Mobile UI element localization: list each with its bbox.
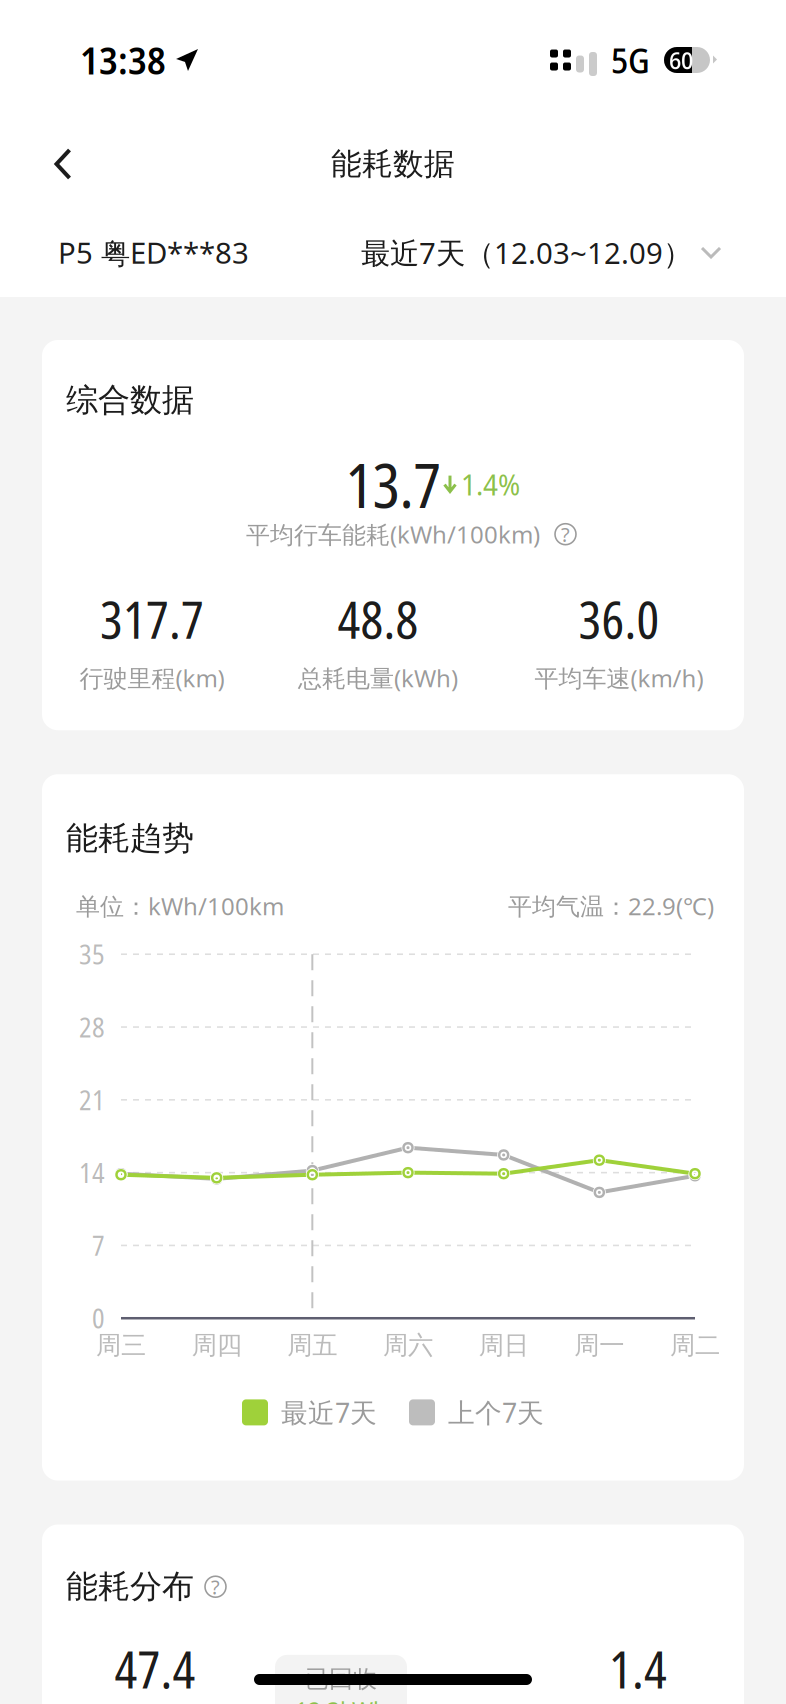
staticText: ? — [211, 1573, 220, 1600]
button[interactable]: 最近7天（12.03~12.09） — [361, 232, 722, 272]
staticText: 48.8 — [337, 584, 418, 653]
staticText: 21 — [79, 1082, 105, 1118]
staticText: P5 粤ED***83 — [58, 232, 249, 273]
staticText: 周五 — [287, 1329, 337, 1361]
staticText: 13:38 — [80, 35, 166, 85]
staticText: 0 — [92, 1300, 105, 1336]
staticText: ? — [561, 521, 570, 548]
staticText: 单位：kWh/100km — [76, 889, 284, 922]
button[interactable]: Back — [32, 131, 94, 197]
staticText: 28 — [79, 1009, 105, 1045]
staticText: 行驶里程(km) — [79, 661, 224, 694]
staticText: 总耗电量(kWh) — [298, 661, 458, 694]
staticText: 能耗分布 — [66, 1567, 194, 1607]
staticText: 5G — [611, 36, 650, 84]
staticText: 综合数据 — [66, 380, 194, 420]
staticText: 周六 — [383, 1329, 433, 1361]
staticText: 能耗数据 — [331, 145, 455, 183]
staticText: 1.4 — [609, 1634, 667, 1703]
staticText: 最近7天 — [281, 1394, 377, 1430]
staticText: 周日 — [479, 1329, 529, 1361]
staticText: 已回收 — [305, 1664, 377, 1694]
staticText: 周四 — [192, 1329, 242, 1361]
staticText: 13.7 — [345, 442, 440, 526]
staticText: 35 — [79, 936, 105, 972]
staticText: 317.7 — [100, 584, 204, 653]
staticText: 60 — [669, 44, 693, 76]
staticText: 36.0 — [578, 584, 659, 653]
staticText: 47.4 — [114, 1634, 195, 1703]
staticText: 12.3kWh — [295, 1695, 387, 1704]
staticText: 周三 — [96, 1329, 146, 1361]
staticText: 平均行车能耗(kWh/100km) — [246, 518, 540, 550]
staticText: 能耗趋势 — [66, 818, 194, 858]
staticText: 1.4% — [461, 464, 520, 504]
staticText: 平均气温：22.9(℃) — [508, 889, 714, 922]
staticText: 最近7天（12.03~12.09） — [361, 232, 692, 272]
staticText: 周一 — [574, 1329, 624, 1361]
staticText: 平均车速(km/h) — [534, 661, 703, 694]
staticText: 周二 — [670, 1329, 720, 1361]
staticText: 14 — [79, 1154, 105, 1191]
staticText: 7 — [92, 1227, 105, 1264]
staticText: 上个7天 — [448, 1394, 544, 1430]
